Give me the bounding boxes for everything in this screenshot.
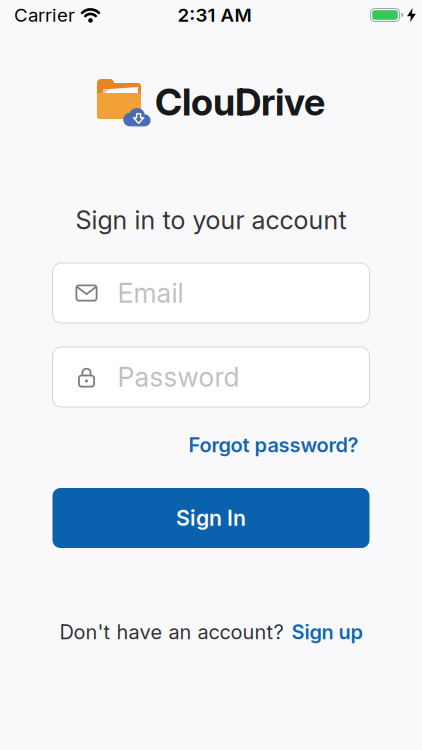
- button[interactable]: Sign up: [291, 620, 362, 644]
- staticText: Sign up: [291, 620, 362, 644]
- button[interactable]: Sign In: [52, 488, 369, 548]
- staticText: Forgot password?: [188, 433, 358, 457]
- staticText: ClouDrive: [155, 80, 325, 124]
- staticText: Email: [117, 277, 183, 309]
- staticText: Sign in to your account: [75, 205, 346, 235]
- staticText: 2:31 AM: [177, 4, 251, 26]
- button[interactable]: Forgot password?: [188, 433, 358, 457]
- staticText: Don't have an account?: [59, 620, 283, 644]
- staticText: Carrier: [14, 4, 75, 26]
- button[interactable]: Email: [52, 263, 369, 323]
- staticText: Sign In: [176, 505, 246, 531]
- staticText: Password: [117, 361, 239, 393]
- button[interactable]: Password: [52, 347, 369, 407]
